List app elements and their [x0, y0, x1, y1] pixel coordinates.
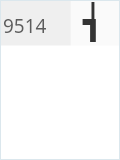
button[interactable]: Add: [78, 0, 102, 45]
button[interactable]: 9514: [0, 0, 71, 46]
staticText: 9514: [3, 13, 47, 39]
